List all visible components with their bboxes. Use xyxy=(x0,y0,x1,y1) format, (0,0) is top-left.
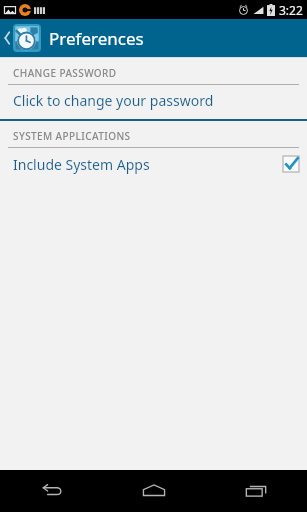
button[interactable]: Navigate up xyxy=(0,19,307,57)
staticText: Include System Apps xyxy=(13,155,150,174)
button[interactable]: Include System Apps xyxy=(0,148,307,180)
staticText: 3:22 xyxy=(279,2,303,18)
button[interactable]: Recent apps xyxy=(205,470,307,512)
button[interactable]: Home xyxy=(103,470,205,512)
staticText: Preferences xyxy=(49,27,144,50)
staticText: Click to change your password xyxy=(13,91,214,110)
staticText: SYSTEM APPLICATIONS xyxy=(13,129,131,143)
button[interactable]: Back xyxy=(0,470,103,512)
staticText: CHANGE PASSWORD xyxy=(13,66,117,80)
button[interactable]: Click to change your password xyxy=(0,85,307,115)
